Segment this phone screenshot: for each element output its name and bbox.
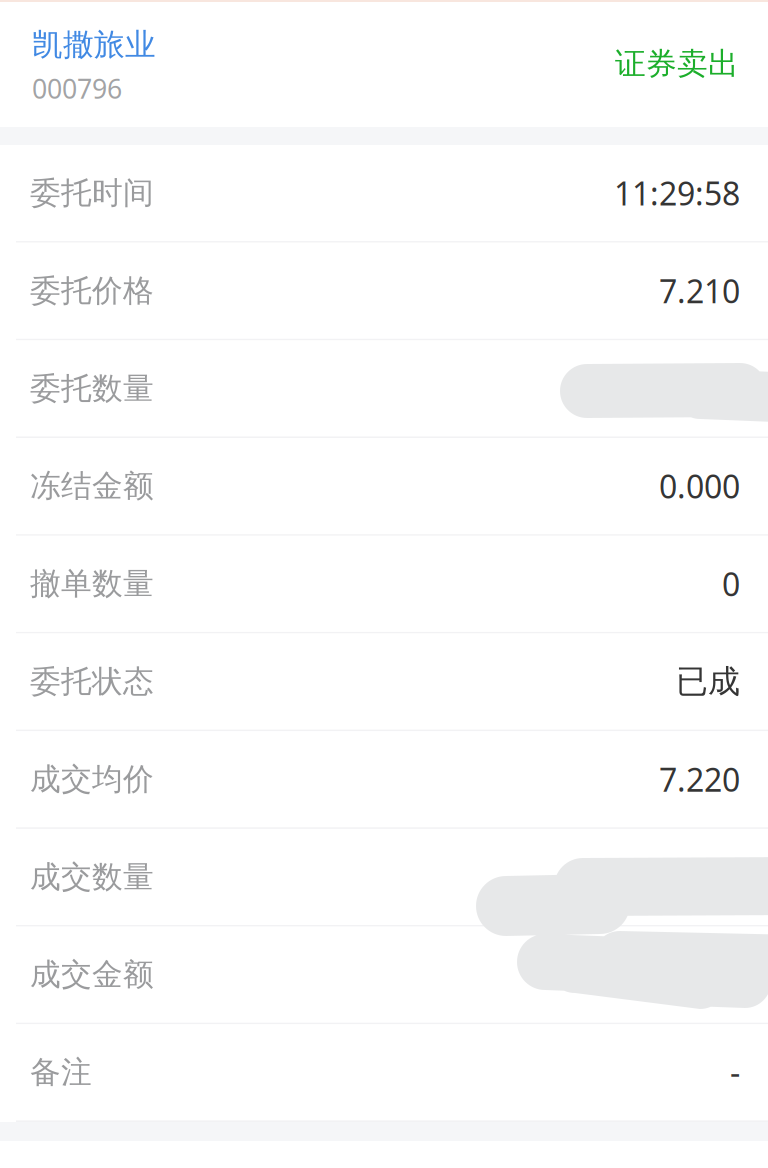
button[interactable]: 委托数量 <box>0 340 768 438</box>
button[interactable]: 成交金额 <box>0 927 768 1024</box>
button[interactable]: 委托时间 <box>0 145 768 243</box>
button[interactable]: 凯撒旅业 <box>0 2 156 106</box>
staticText: - <box>730 1051 740 1094</box>
staticText: 11:29:58 <box>614 172 740 214</box>
staticText: 证券卖出 <box>615 45 739 83</box>
staticText: 凯撒旅业 <box>32 26 156 64</box>
staticText: 成交数量 <box>30 858 154 896</box>
staticText: 成交金额 <box>30 956 154 993</box>
staticText: 备注 <box>30 1053 92 1091</box>
button[interactable]: 撤单数量 <box>0 536 768 633</box>
button[interactable]: 委托状态 <box>0 633 768 731</box>
staticText: 0.000 <box>659 465 740 507</box>
staticText: 7.210 <box>659 269 740 312</box>
staticText: 委托价格 <box>30 272 154 310</box>
staticText: 7.220 <box>659 758 740 800</box>
staticText: 成交均价 <box>30 760 154 798</box>
staticText: 000796 <box>32 71 122 106</box>
button[interactable]: 成交均价 <box>0 731 768 829</box>
button[interactable]: 成交数量 <box>0 829 768 927</box>
staticText: 委托时间 <box>30 174 154 212</box>
staticText: 0 <box>722 563 740 605</box>
staticText: 冻结金额 <box>30 467 154 505</box>
button[interactable]: 备注 <box>0 1024 768 1122</box>
staticText: 已成 <box>676 662 740 701</box>
button[interactable]: 冻结金额 <box>0 438 768 536</box>
staticText: 委托状态 <box>30 663 154 700</box>
button[interactable]: 委托价格 <box>0 243 768 340</box>
staticText: 委托数量 <box>30 370 154 407</box>
staticText: 撤单数量 <box>30 565 154 603</box>
